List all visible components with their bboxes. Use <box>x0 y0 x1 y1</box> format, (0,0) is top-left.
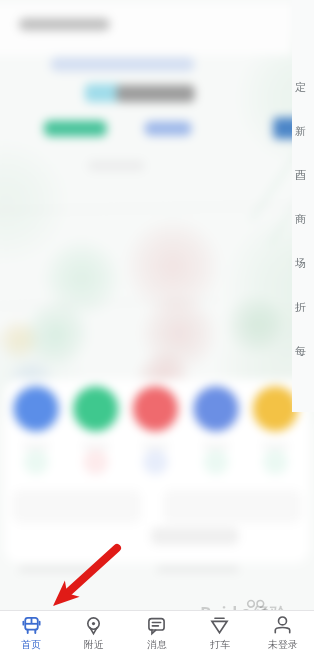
staticText: 打车 <box>210 638 230 651</box>
button[interactable]: 未登录 <box>251 611 314 652</box>
button[interactable]: 附近 <box>62 611 125 652</box>
staticText: Baidu 经验 <box>200 602 287 625</box>
staticText: 折 <box>295 300 306 314</box>
button[interactable]: 消息 <box>125 611 188 652</box>
staticText: 附近 <box>84 638 104 651</box>
staticText: 首页 <box>21 638 41 651</box>
staticText: 商 <box>295 212 306 226</box>
staticText: 场 <box>295 256 306 270</box>
staticText: jingyan.baidu.com <box>201 620 262 630</box>
staticText: 定 <box>295 80 306 94</box>
staticText: 未登录 <box>268 638 298 651</box>
staticText: 消息 <box>147 638 167 651</box>
button[interactable]: 打车 <box>188 611 251 652</box>
staticText: 新 <box>295 124 306 138</box>
button[interactable]: 首页 <box>0 611 62 652</box>
staticText: 每 <box>295 344 306 358</box>
staticText: 酉 <box>295 168 306 182</box>
